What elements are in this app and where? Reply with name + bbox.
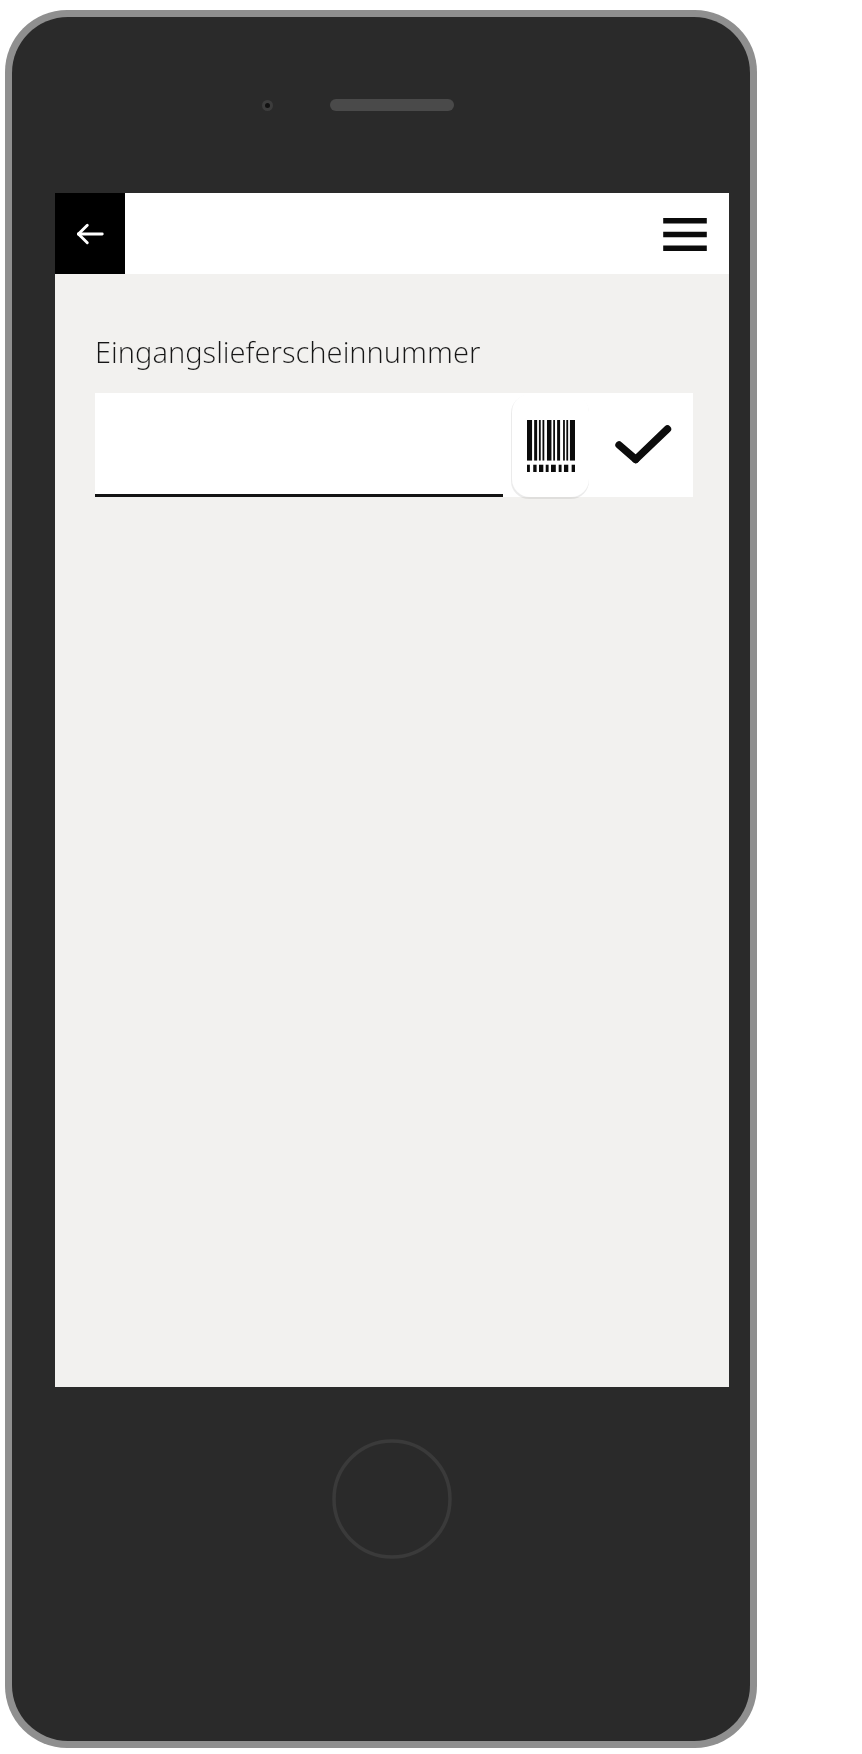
button[interactable]: Eingangslieferscheinnummer input xyxy=(95,393,503,497)
button[interactable]: Back xyxy=(55,193,125,274)
button[interactable]: Menu xyxy=(651,200,719,268)
staticText: Eingangslieferscheinnummer xyxy=(95,332,481,371)
button[interactable]: Scan barcode xyxy=(512,394,589,497)
button[interactable]: Confirm xyxy=(593,393,693,497)
